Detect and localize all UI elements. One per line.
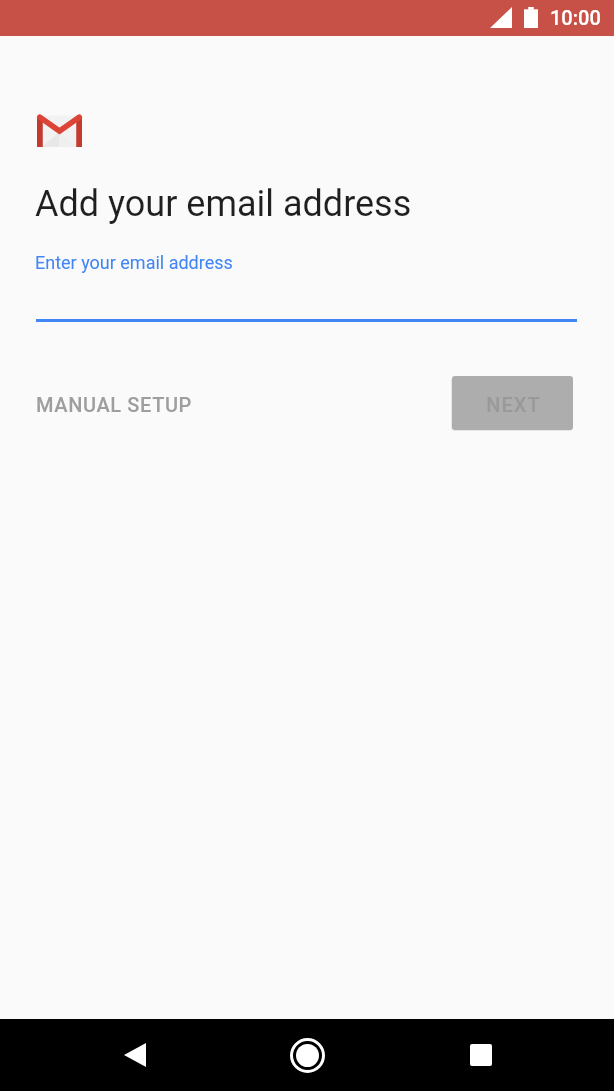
staticText: 10:00: [550, 6, 601, 29]
staticText: NEXT: [486, 393, 541, 416]
staticText: Enter your email address: [35, 252, 233, 273]
button[interactable]: Home: [272, 1019, 343, 1091]
button[interactable]: MANUAL SETUP: [20, 381, 208, 428]
button[interactable]: NEXT: [452, 376, 573, 430]
button[interactable]: Back: [99, 1019, 170, 1091]
staticText: Add your email address: [35, 183, 412, 225]
staticText: MANUAL SETUP: [36, 393, 192, 416]
button[interactable]: Recent apps: [445, 1019, 516, 1091]
